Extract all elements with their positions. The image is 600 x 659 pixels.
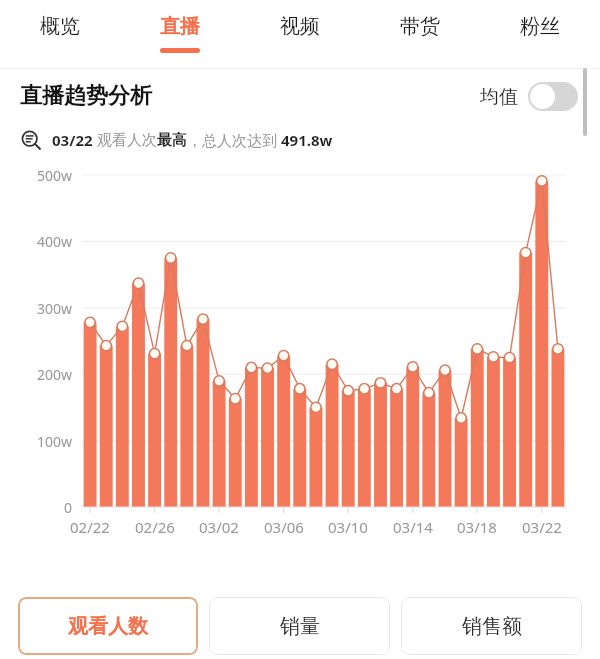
staticText: 概览: [40, 14, 80, 39]
other: Toggle average: [528, 82, 578, 111]
staticText: 491.8w: [281, 130, 333, 150]
staticText: 03/02: [199, 517, 239, 537]
staticText: 销量: [280, 614, 320, 639]
staticText: 销售额: [462, 614, 522, 639]
button[interactable]: 观看人数: [18, 597, 198, 655]
staticText: 均值: [480, 85, 518, 109]
staticText: 03/10: [328, 517, 368, 537]
staticText: 直播: [160, 14, 200, 39]
staticText: 观看人次: [97, 131, 157, 150]
staticText: 视频: [280, 14, 320, 39]
staticText: 03/06: [264, 517, 304, 537]
button[interactable]: 粉丝: [480, 0, 600, 68]
staticText: 03/18: [457, 517, 497, 537]
button[interactable]: 视频: [240, 0, 360, 68]
staticText: 03/22: [52, 130, 97, 150]
staticText: 粉丝: [520, 14, 560, 39]
staticText: 02/26: [135, 517, 175, 537]
staticText: ，总人次达到: [187, 130, 281, 150]
button[interactable]: 销量: [209, 597, 390, 655]
button[interactable]: 均值: [480, 82, 578, 111]
button[interactable]: 概览: [0, 0, 120, 68]
staticText: 最高: [157, 131, 187, 150]
staticText: 400w: [36, 232, 72, 251]
staticText: 500w: [36, 166, 72, 185]
staticText: 200w: [36, 365, 72, 384]
staticText: 300w: [36, 299, 72, 318]
staticText: 02/22: [70, 517, 110, 537]
button[interactable]: 直播: [120, 0, 240, 68]
button[interactable]: 带货: [360, 0, 480, 68]
staticText: 带货: [400, 14, 440, 39]
staticText: 0: [63, 498, 72, 517]
staticText: 观看人数: [68, 614, 148, 639]
button[interactable]: 销售额: [401, 597, 582, 655]
staticText: 03/14: [393, 517, 433, 537]
staticText: 100w: [36, 432, 72, 451]
staticText: 03/22: [522, 517, 562, 537]
staticText: 直播趋势分析: [20, 82, 152, 110]
